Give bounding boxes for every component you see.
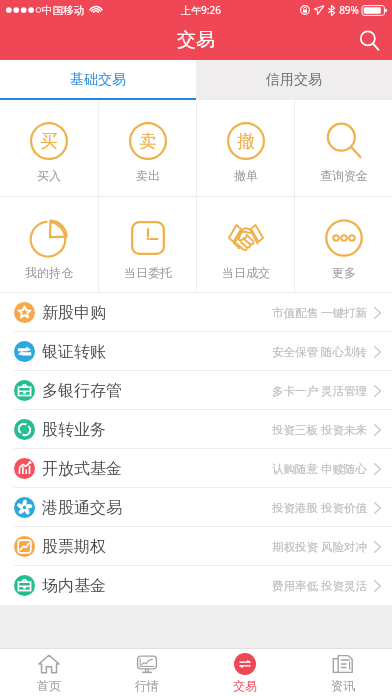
button[interactable]: 卖 — [99, 100, 196, 196]
button[interactable]: 股票期权 — [0, 527, 392, 566]
button[interactable]: 资讯 — [294, 649, 392, 696]
staticText: 撤 — [237, 130, 255, 152]
staticText: 卖 — [139, 130, 157, 152]
button[interactable]: 更多 — [295, 197, 392, 292]
staticText: 投资港股 投资价值 — [272, 500, 367, 516]
staticText: 上午9:26 — [181, 3, 221, 17]
button[interactable]: 撤 — [197, 100, 294, 196]
staticText: 资讯 — [331, 678, 355, 693]
button[interactable]: Search — [346, 20, 392, 60]
staticText: 开放式基金 — [42, 459, 122, 479]
staticText: 首页 — [37, 678, 61, 693]
staticText: 股票期权 — [42, 537, 106, 557]
button[interactable]: 银证转账 — [0, 332, 392, 371]
staticText: 市值配售 一键打新 — [272, 305, 367, 321]
staticText: 信用交易 — [266, 71, 322, 89]
staticText: 多银行存管 — [42, 381, 122, 401]
button[interactable]: 我的持仓 — [0, 197, 98, 292]
staticText: 费用率低 投资灵活 — [272, 578, 367, 594]
staticText: 更多 — [332, 265, 356, 280]
button[interactable]: 港股通交易 — [0, 488, 392, 527]
staticText: 中国移动 — [42, 4, 84, 17]
button[interactable]: 查询资金 — [295, 100, 392, 196]
staticText: 交易 — [177, 28, 215, 52]
staticText: 港股通交易 — [42, 498, 122, 518]
staticText: 撤单 — [234, 168, 258, 183]
staticText: 买入 — [37, 168, 61, 183]
staticText: 基础交易 — [70, 71, 126, 89]
button[interactable]: 新股申购 — [0, 293, 392, 332]
button[interactable]: 买 — [0, 100, 98, 196]
button[interactable]: 首页 — [0, 649, 98, 696]
staticText: 89% — [339, 3, 359, 17]
button[interactable]: 开放式基金 — [0, 449, 392, 488]
button[interactable]: 股转业务 — [0, 410, 392, 449]
button[interactable]: 行情 — [98, 649, 196, 696]
staticText: 银证转账 — [42, 342, 106, 362]
staticText: 场内基金 — [42, 576, 106, 596]
staticText: 新股申购 — [42, 303, 106, 323]
staticText: 卖出 — [136, 168, 160, 183]
staticText: 当日委托 — [124, 265, 172, 280]
staticText: 安全保管 随心划转 — [272, 344, 367, 360]
staticText: 投资三板 投资未来 — [272, 422, 367, 438]
staticText: 我的持仓 — [25, 265, 73, 280]
staticText: 股转业务 — [42, 420, 106, 440]
staticText: 买 — [40, 130, 58, 152]
staticText: 查询资金 — [320, 168, 368, 183]
staticText: 多卡一户 灵活管理 — [272, 383, 367, 399]
staticText: 期权投资 风险对冲 — [272, 539, 367, 555]
button[interactable]: 场内基金 — [0, 566, 392, 605]
staticText: 交易 — [233, 678, 257, 693]
button[interactable]: 基础交易 — [0, 60, 196, 100]
button[interactable]: 交易 — [196, 649, 294, 696]
button[interactable]: 当日成交 — [197, 197, 294, 292]
button[interactable]: 多银行存管 — [0, 371, 392, 410]
button[interactable]: 信用交易 — [196, 60, 392, 100]
button[interactable]: 当日委托 — [99, 197, 196, 292]
staticText: 行情 — [135, 678, 159, 693]
staticText: 认购随意 申赎随心 — [272, 461, 367, 477]
staticText: 当日成交 — [222, 265, 270, 280]
